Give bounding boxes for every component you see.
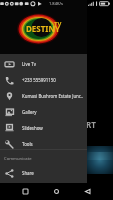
staticText: +233 555991150 <box>22 77 56 83</box>
button[interactable]: Kumasi Bushrom Estate Junc.. <box>0 88 87 104</box>
staticText: TV <box>54 20 62 28</box>
staticText: 1.84K/s <box>49 1 63 6</box>
staticText: Tools <box>22 141 33 147</box>
staticText: Kumasi Bushrom Estate Junc.. <box>22 93 84 99</box>
button[interactable]: Back <box>79 183 95 200</box>
button[interactable]: Live Tv <box>0 56 87 72</box>
button[interactable]: Share <box>0 165 87 181</box>
staticText: Communicate <box>4 156 32 162</box>
button[interactable]: Home <box>48 183 64 200</box>
staticText: Slideshow <box>22 125 43 131</box>
button[interactable]: Gallery <box>0 104 87 120</box>
button[interactable]: +233 555991150 <box>0 72 87 88</box>
button[interactable]: Recents <box>17 183 33 200</box>
button[interactable]: Tools <box>0 136 87 152</box>
staticText: Gallery <box>22 109 37 115</box>
staticText: Live Tv <box>22 61 36 67</box>
staticText: RT <box>86 119 96 130</box>
button[interactable]: Slideshow <box>0 120 87 136</box>
staticText: Share <box>22 170 34 176</box>
staticText: DESTINY <box>26 23 60 34</box>
